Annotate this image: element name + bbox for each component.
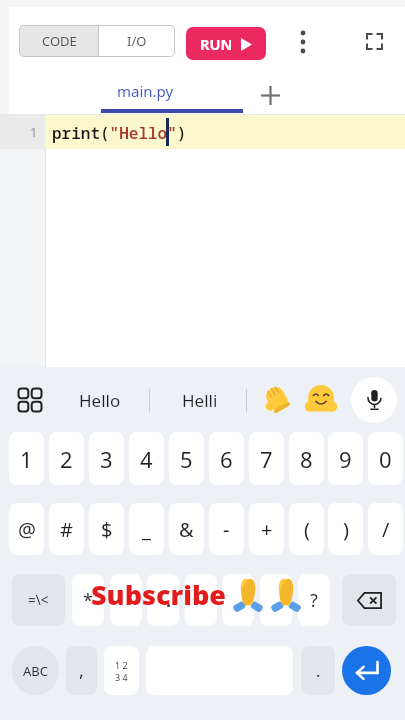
button[interactable]: 6 [209, 432, 244, 485]
button[interactable]: 9 [328, 432, 363, 485]
staticText: + [261, 516, 273, 543]
staticText: - [223, 516, 230, 543]
staticText: CODE [42, 32, 77, 50]
staticText: & [179, 516, 194, 543]
button[interactable]: ? [298, 574, 330, 626]
button[interactable]: main.py [101, 72, 243, 109]
staticText: @ [18, 516, 36, 543]
staticText: / [382, 516, 390, 543]
button[interactable]: + [249, 503, 284, 555]
button[interactable]: 7 [249, 432, 284, 485]
button[interactable]: 0 [368, 432, 403, 485]
button[interactable]: / [368, 503, 403, 555]
staticText: print("Hello") [52, 122, 187, 144]
button[interactable] [351, 377, 397, 423]
staticText: ? [310, 588, 318, 613]
button[interactable]: Helli [168, 386, 232, 414]
staticText: * [83, 588, 93, 613]
staticText: main.py [117, 81, 174, 101]
button[interactable]: @ [9, 503, 44, 555]
button[interactable]: I/O [99, 26, 174, 56]
staticText: Subscribe [91, 576, 227, 613]
button[interactable]: 2 [49, 432, 84, 485]
staticText: 9 [339, 444, 352, 474]
staticText: Hello [79, 389, 121, 412]
button[interactable] [110, 574, 142, 626]
button[interactable]: # [49, 503, 84, 555]
button[interactable]: & [169, 503, 204, 555]
button[interactable]: 3 [89, 432, 124, 485]
button[interactable]: RUN [186, 27, 266, 60]
button[interactable] [258, 83, 282, 107]
button[interactable]: 4 [129, 432, 164, 485]
button[interactable]: $ [89, 503, 124, 555]
staticText: ABC [23, 662, 48, 680]
button[interactable]: ) [328, 503, 363, 555]
button[interactable]: _ [129, 503, 164, 555]
staticText: ) [343, 516, 349, 543]
staticText: 1 2 [115, 659, 128, 671]
staticText: Helli [182, 389, 218, 412]
staticText: =\< [28, 591, 49, 609]
staticText: # [60, 516, 73, 543]
button[interactable] [342, 574, 396, 626]
staticText: RUN [200, 34, 233, 54]
button[interactable]: 1 [9, 432, 44, 485]
button[interactable]: 5 [169, 432, 204, 485]
staticText: 6 [220, 444, 233, 474]
button[interactable]: ABC [12, 646, 59, 695]
staticText: 2 [60, 444, 73, 474]
button[interactable] [222, 574, 254, 626]
staticText: 8 [300, 444, 313, 474]
staticText: 4 [140, 444, 153, 474]
staticText: 5 [180, 444, 193, 474]
staticText: 3 4 [115, 671, 128, 683]
button[interactable]: . [301, 646, 335, 695]
button[interactable]: * [72, 574, 104, 626]
staticText: , [79, 658, 84, 683]
staticText: 7 [260, 444, 273, 474]
staticText: 3 [100, 444, 113, 474]
button[interactable]: ( [289, 503, 324, 555]
button[interactable] [147, 574, 179, 626]
button[interactable]: - [209, 503, 244, 555]
button[interactable] [362, 29, 386, 53]
staticText: I/O [127, 32, 147, 50]
button[interactable] [185, 574, 217, 626]
button[interactable] [342, 646, 391, 695]
button[interactable]: 8 [289, 432, 324, 485]
staticText: 0 [379, 444, 392, 474]
staticText: $ [101, 516, 113, 543]
button[interactable]: CODE [20, 26, 98, 56]
staticText: 1 [30, 123, 38, 141]
button[interactable]: , [66, 646, 97, 695]
button[interactable] [292, 25, 314, 59]
staticText: . [316, 660, 321, 682]
button[interactable]: 1 2 [104, 646, 139, 695]
button[interactable]: =\< [12, 574, 65, 626]
button[interactable] [260, 574, 292, 626]
button[interactable] [15, 385, 45, 415]
staticText: _ [142, 516, 151, 543]
staticText: ( [304, 516, 310, 543]
staticText: 1 [20, 444, 33, 474]
button[interactable]: Hello [68, 386, 132, 414]
